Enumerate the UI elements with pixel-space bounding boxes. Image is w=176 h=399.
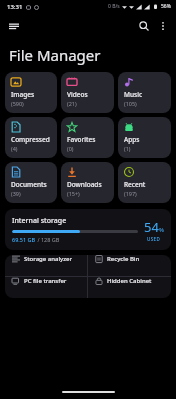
staticText: Apps (124, 135, 140, 144)
button[interactable]: Videos (61, 72, 114, 113)
button[interactable]: Menu (4, 16, 24, 36)
button[interactable]: Internal storage (5, 209, 171, 250)
staticText: Videos (67, 90, 88, 99)
staticText: / 128 GB (36, 236, 60, 243)
staticText: (0) (67, 145, 74, 152)
staticText: File Manager (9, 45, 101, 65)
staticText: Documents (11, 180, 47, 189)
button[interactable]: PC file transfer (5, 277, 87, 285)
button[interactable]: Apps (118, 117, 171, 158)
button[interactable]: Images (5, 72, 57, 113)
staticText: (105) (124, 100, 137, 107)
staticText: Compressed (11, 135, 50, 144)
staticText: 13:31 (7, 3, 23, 11)
staticText: 56% (161, 3, 171, 10)
button[interactable]: More options (154, 17, 172, 35)
staticText: Recent (124, 180, 146, 189)
staticText: (1) (124, 145, 131, 152)
staticText: USED (147, 236, 161, 242)
button[interactable]: Recycle Bin (88, 255, 171, 263)
button[interactable]: Storage analyzer (5, 255, 87, 263)
staticText: (4) (11, 145, 18, 152)
staticText: Downloads (67, 180, 102, 189)
staticText: % (159, 226, 164, 234)
staticText: Hidden Cabinet (107, 277, 152, 285)
staticText: 69.51 GB (12, 236, 36, 243)
staticText: (197) (124, 190, 137, 197)
button[interactable]: Hidden Cabinet (88, 277, 171, 285)
staticText: (15+) (67, 190, 80, 197)
staticText: (590) (11, 100, 24, 107)
staticText: (39) (11, 190, 21, 197)
staticText: Music (124, 90, 143, 99)
staticText: PC file transfer (24, 277, 67, 285)
button[interactable]: Favorites (61, 117, 114, 158)
staticText: Images (11, 90, 35, 99)
button[interactable]: Music (118, 72, 171, 113)
button[interactable]: Search (134, 16, 154, 36)
staticText: Internal storage (12, 216, 67, 226)
staticText: 54 (144, 218, 159, 236)
staticText: 0 B/s (108, 3, 120, 10)
button[interactable]: Documents (5, 162, 57, 203)
button[interactable]: Compressed (5, 117, 57, 158)
button[interactable]: Recent (118, 162, 171, 203)
button[interactable]: Downloads (61, 162, 114, 203)
staticText: (21) (67, 100, 77, 107)
staticText: Favorites (67, 135, 96, 144)
staticText: Recycle Bin (107, 255, 140, 263)
staticText: Storage analyzer (24, 255, 73, 263)
